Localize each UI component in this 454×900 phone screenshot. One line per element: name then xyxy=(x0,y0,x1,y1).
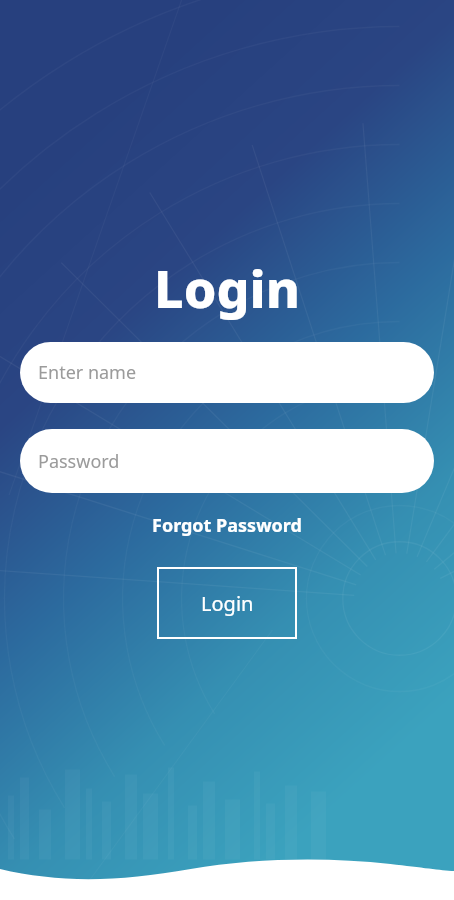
staticText: Enter name xyxy=(38,360,137,385)
button[interactable]: Login xyxy=(157,567,297,639)
staticText: Password xyxy=(38,449,120,474)
button[interactable]: Forgot Password xyxy=(140,508,314,543)
staticText: Login xyxy=(154,252,300,323)
staticText: Login xyxy=(201,590,254,617)
button[interactable]: Enter name xyxy=(20,342,434,403)
button[interactable]: Password xyxy=(20,429,434,493)
staticText: Forgot Password xyxy=(152,513,302,538)
